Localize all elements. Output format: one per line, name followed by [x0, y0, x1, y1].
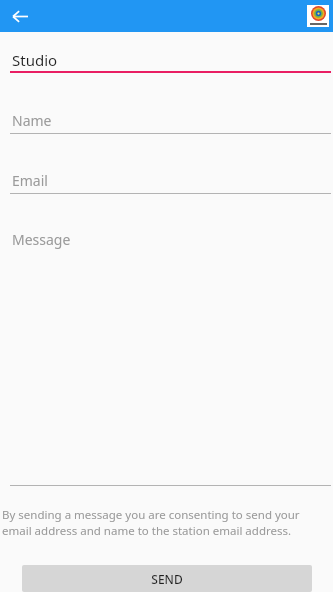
staticText: Email [12, 171, 48, 190]
button[interactable]: Station logo [307, 5, 329, 27]
button[interactable]: SEND [22, 565, 312, 592]
staticText: Studio [12, 50, 58, 70]
button[interactable] [0, 44, 333, 74]
staticText: By sending a message you are consenting … [2, 507, 327, 538]
button[interactable]: Back [8, 4, 32, 28]
button[interactable] [0, 165, 333, 195]
staticText: Message [12, 230, 71, 249]
staticText: Name [12, 111, 52, 130]
staticText: SEND [151, 571, 183, 587]
button[interactable] [0, 105, 333, 135]
button[interactable] [0, 225, 333, 485]
